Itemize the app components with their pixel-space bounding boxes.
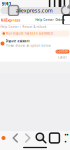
staticText: AliExpress [0,17,20,23]
button[interactable]: Cancel [55,56,69,60]
button[interactable]: Confirm [55,50,69,54]
staticText: ••• [64,131,68,145]
button[interactable]: Search [37,134,44,141]
staticText: Dispute assistant [5,39,29,43]
button[interactable]: Back [13,135,17,140]
button[interactable]: Forward [25,135,29,140]
staticText: aliexpress.com [16,7,53,14]
staticText: 9:41 [1,0,11,7]
button[interactable]: Site [1,136,5,140]
staticText: Help Center > Return & refund [0,25,46,29]
staticText: Your dispute has been submitted [6,32,53,35]
staticText: Help Center [35,18,53,22]
button[interactable]: More [64,131,68,145]
staticText: Cancel [58,56,67,59]
staticText: Orders [55,18,64,22]
staticText: Confirm [56,50,68,53]
staticText: Please choose an option below [5,44,50,47]
